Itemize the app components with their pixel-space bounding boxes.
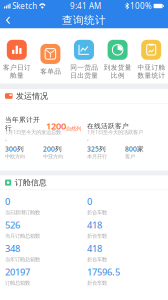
staticText: 17596.5 xyxy=(87,266,120,278)
button[interactable]: Back xyxy=(0,12,16,28)
staticText: 当月订舱总箱数 xyxy=(5,233,40,239)
staticText: 中亚订舱 数量统计 xyxy=(137,63,165,80)
staticText: 当日新增订舱数 xyxy=(5,209,40,216)
staticText: 客户 xyxy=(125,153,135,160)
staticText: 526 xyxy=(5,219,20,231)
button[interactable]: 同一货品 日出货量 xyxy=(67,40,101,80)
staticText: 折合车数 xyxy=(87,209,107,216)
staticText: 发运情况 xyxy=(16,91,48,101)
staticText: Sketch xyxy=(12,1,37,11)
staticText: 当年累计开行 xyxy=(5,116,40,132)
staticText: 客单品 xyxy=(40,67,61,76)
staticText: 折合车数 xyxy=(87,256,107,263)
button[interactable]: 客单品 xyxy=(34,44,67,76)
staticText: 当年订舱总箱数 xyxy=(5,256,40,263)
staticText: 中欧方向 xyxy=(5,153,25,160)
staticText: 在线活跃客户 xyxy=(87,122,129,130)
staticText: 418 xyxy=(87,219,102,231)
staticText: 325列 xyxy=(87,144,106,153)
staticText: 348 xyxy=(5,242,20,255)
staticText: 本月开行 xyxy=(87,153,107,160)
staticText: 查询统计 xyxy=(62,14,106,27)
button[interactable]: 中亚订舱 数量统计 xyxy=(134,40,168,80)
staticText: 同一货品 日出货量 xyxy=(70,63,98,80)
staticText: 800家 xyxy=(125,144,144,153)
staticText: 中亚方向 xyxy=(43,153,63,160)
staticText: 到发货量 比例 xyxy=(104,63,132,80)
staticText: 折合车数 xyxy=(87,233,107,239)
button[interactable]: 客户日订 舱量 xyxy=(0,40,34,80)
staticText: 200列 xyxy=(43,144,62,153)
staticText: 418 xyxy=(87,242,102,255)
staticText: 0 xyxy=(5,195,10,208)
staticText: 客户日订 舱量 xyxy=(3,63,31,80)
staticText: 折合车数 xyxy=(87,280,107,286)
staticText: 1月1日至今天的发运总数 xyxy=(5,128,61,135)
staticText: 300列 xyxy=(5,144,24,153)
staticText: 100% xyxy=(130,1,152,11)
staticText: 订舱总箱数 xyxy=(5,280,30,286)
staticText: 1月1日至今天的活跃客户 xyxy=(87,128,143,135)
staticText: 9:41 AM xyxy=(70,1,101,11)
staticText: 20197 xyxy=(5,266,30,278)
staticText: 自然列 xyxy=(66,125,81,132)
staticText: 1200 xyxy=(46,120,66,132)
button[interactable]: 到发货量 比例 xyxy=(101,40,134,80)
staticText: 0 xyxy=(87,195,92,208)
staticText: 订舱信息 xyxy=(15,178,47,187)
